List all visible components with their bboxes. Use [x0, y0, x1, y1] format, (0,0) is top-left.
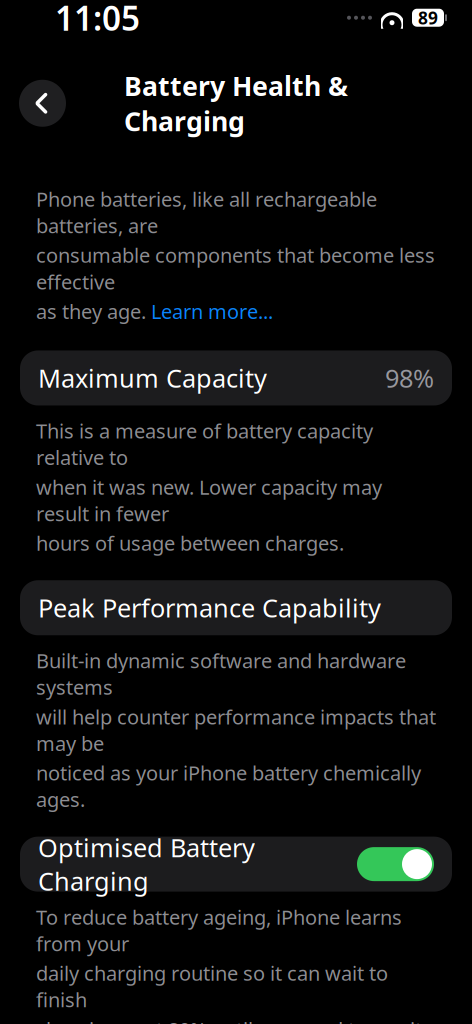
button[interactable]: Maximum Capacity [20, 350, 452, 405]
button[interactable]: Learn more... [151, 298, 273, 324]
button[interactable]: Optimised Battery Charging [20, 837, 452, 892]
staticText: daily charging routine so it can wait to… [36, 960, 388, 1013]
staticText: when it was new. Lower capacity may resu… [36, 474, 382, 527]
staticText: Battery Health & Charging [124, 68, 348, 139]
staticText: Learn more... [151, 298, 273, 324]
staticText: hours of usage between charges. [36, 530, 344, 556]
staticText: To reduce battery ageing, iPhone learns … [36, 904, 402, 957]
button[interactable]: Peak Performance Capability [20, 580, 452, 635]
staticText: consumable components that become less e… [36, 242, 435, 295]
staticText: as they age. [36, 298, 151, 324]
staticText: noticed as your iPhone battery chemicall… [36, 759, 421, 813]
staticText: will help counter performance impacts th… [36, 703, 436, 756]
staticText: This is a measure of battery capacity re… [36, 417, 373, 471]
button[interactable]: Back [19, 80, 66, 127]
staticText: 11:05 [55, 0, 140, 40]
staticText: charging past 80% until you need to use … [36, 1016, 427, 1024]
staticText: 98% [385, 361, 434, 395]
staticText: Optimised Battery Charging [38, 830, 255, 898]
staticText: 89 [418, 6, 438, 29]
staticText: Built-in dynamic software and hardware s… [36, 647, 406, 700]
staticText: Peak Performance Capability [38, 591, 381, 624]
staticText: Phone batteries, like all rechargeable b… [36, 186, 377, 239]
staticText: Maximum Capacity [38, 361, 267, 395]
